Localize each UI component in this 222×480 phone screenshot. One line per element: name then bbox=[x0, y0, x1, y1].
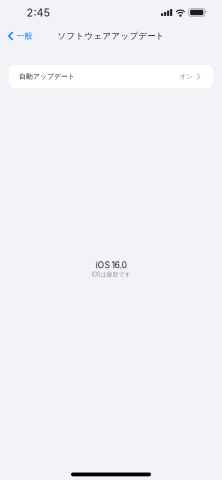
staticText: 2:45 bbox=[26, 6, 49, 19]
staticText: 一般 bbox=[17, 31, 33, 41]
staticText: 自動アップデート bbox=[19, 72, 75, 81]
button[interactable]: 一般 bbox=[0, 28, 39, 44]
staticText: オン bbox=[179, 72, 193, 81]
button[interactable]: 自動アップデート bbox=[9, 65, 213, 88]
staticText: ソフトウェアアップデート bbox=[57, 31, 164, 41]
staticText: iOS 16.0 bbox=[95, 260, 126, 270]
staticText: iOSは最新です bbox=[91, 271, 130, 278]
